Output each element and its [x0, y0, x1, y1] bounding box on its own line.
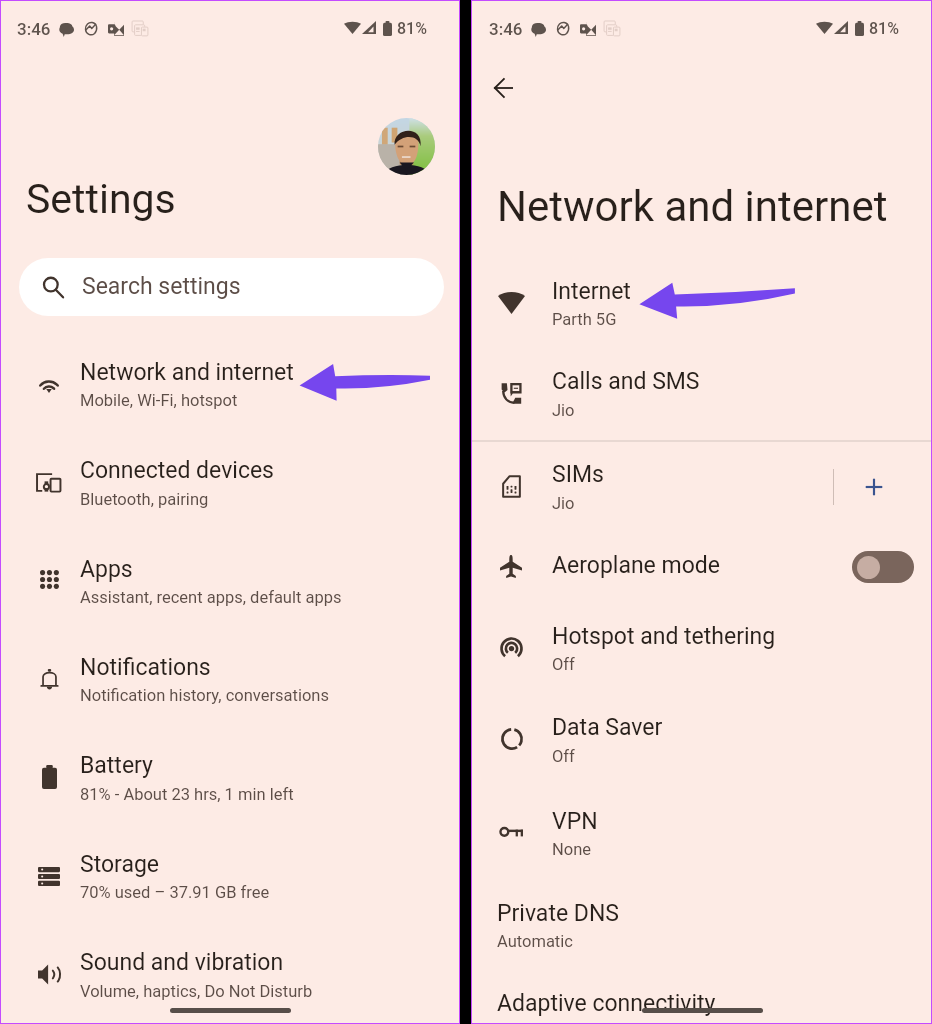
button[interactable] [472, 784, 931, 870]
staticText: Off [552, 655, 575, 674]
staticText: Parth 5G [552, 310, 617, 329]
staticText: 81% [869, 19, 899, 38]
staticText: Private DNS [497, 900, 619, 927]
button[interactable] [472, 438, 931, 524]
staticText: Off [552, 747, 575, 766]
staticText: Settings [26, 175, 176, 223]
staticText: Network and internet [80, 359, 294, 386]
staticText: Sound and vibration [80, 949, 284, 976]
staticText: 70% used – 37.91 GB free [80, 883, 270, 902]
staticText: Volume, haptics, Do Not Disturb [80, 982, 313, 1001]
button[interactable] [472, 599, 931, 685]
button[interactable] [852, 551, 914, 583]
staticText: Connected devices [80, 457, 274, 484]
staticText: Jio [552, 401, 575, 420]
staticText: Network and internet [497, 182, 888, 231]
staticText: Battery [80, 752, 153, 779]
staticText: Notifications [80, 654, 211, 681]
staticText: 3:46 [17, 19, 51, 39]
staticText: Apps [80, 556, 133, 583]
button[interactable] [1, 432, 459, 524]
button[interactable]: Search settings [19, 258, 444, 316]
staticText: Calls and SMS [552, 368, 700, 395]
button[interactable] [1, 530, 459, 622]
button[interactable] [1, 727, 459, 819]
staticText: Adaptive connectivity [497, 990, 716, 1017]
staticText: Notification history, conversations [80, 686, 329, 705]
button[interactable] [472, 872, 931, 958]
staticText: Bluetooth, pairing [80, 490, 209, 509]
staticText: Search settings [82, 273, 241, 300]
staticText: Data Saver [552, 714, 663, 741]
button[interactable] [1, 924, 459, 1016]
button[interactable]: Add SIM [850, 463, 898, 511]
button[interactable]: Back [480, 65, 526, 111]
staticText: Hotspot and tethering [552, 623, 776, 650]
button[interactable] [472, 345, 931, 431]
staticText: Aeroplane mode [552, 552, 720, 579]
button[interactable] [472, 965, 931, 1023]
staticText: Internet [552, 278, 631, 305]
staticText: Jio [552, 494, 575, 513]
staticText: Mobile, Wi-Fi, hotspot [80, 391, 238, 410]
button[interactable]: Account [378, 118, 435, 175]
button[interactable] [472, 530, 931, 592]
staticText: 81% [397, 19, 427, 38]
button[interactable] [472, 691, 931, 777]
button[interactable] [1, 629, 459, 721]
staticText: 81% - About 23 hrs, 1 min left [80, 785, 294, 804]
staticText: None [552, 840, 592, 859]
button[interactable] [472, 255, 931, 341]
button[interactable] [1, 334, 459, 426]
button[interactable] [1, 826, 459, 918]
staticText: VPN [552, 808, 598, 835]
staticText: Storage [80, 851, 160, 878]
staticText: Automatic [497, 932, 573, 951]
staticText: 3:46 [489, 19, 523, 39]
staticText: Assistant, recent apps, default apps [80, 588, 342, 607]
staticText: SIMs [552, 461, 604, 488]
